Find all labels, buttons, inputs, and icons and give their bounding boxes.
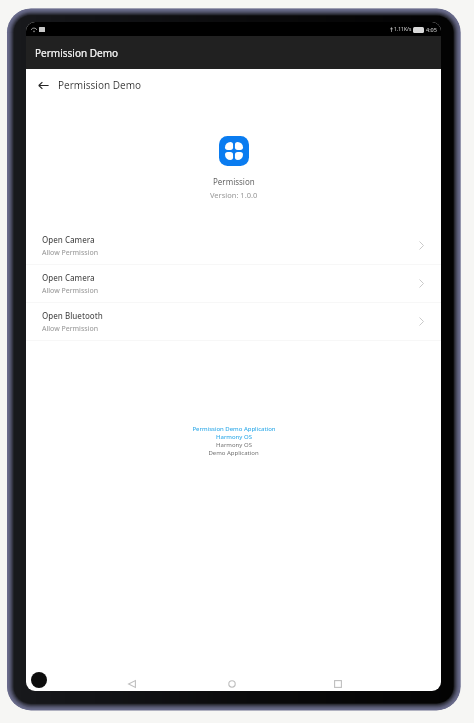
staticText: Harmony OS: [216, 441, 252, 449]
button[interactable]: Back: [122, 674, 142, 691]
button[interactable]: Open Camera: [26, 265, 441, 302]
staticText: Version: 1.0.0: [210, 190, 258, 200]
staticText: Allow Permission: [42, 324, 98, 334]
staticText: Open Bluetooth: [42, 310, 103, 321]
staticText: Allow Permission: [42, 286, 98, 296]
staticText: 1.11K/s: [394, 26, 412, 33]
staticText: Permission Demo: [58, 78, 142, 92]
button[interactable]: Assistant: [31, 672, 47, 688]
staticText: Demo Application: [208, 449, 259, 457]
staticText: 4:05: [426, 26, 437, 33]
button[interactable]: Back: [26, 69, 441, 100]
button[interactable]: Recent apps: [328, 674, 348, 691]
staticText: Harmony OS: [216, 433, 252, 441]
button[interactable]: Open Bluetooth: [26, 303, 441, 340]
staticText: Allow Permission: [42, 248, 98, 258]
staticText: Permission Demo: [35, 46, 119, 60]
button[interactable]: Open Camera: [26, 227, 441, 264]
staticText: Open Camera: [42, 234, 95, 245]
button[interactable]: Back: [34, 76, 52, 94]
staticText: Permission Demo Application: [192, 425, 276, 433]
staticText: Permission: [213, 176, 255, 187]
staticText: Open Camera: [42, 272, 95, 283]
button[interactable]: Home: [222, 674, 242, 691]
